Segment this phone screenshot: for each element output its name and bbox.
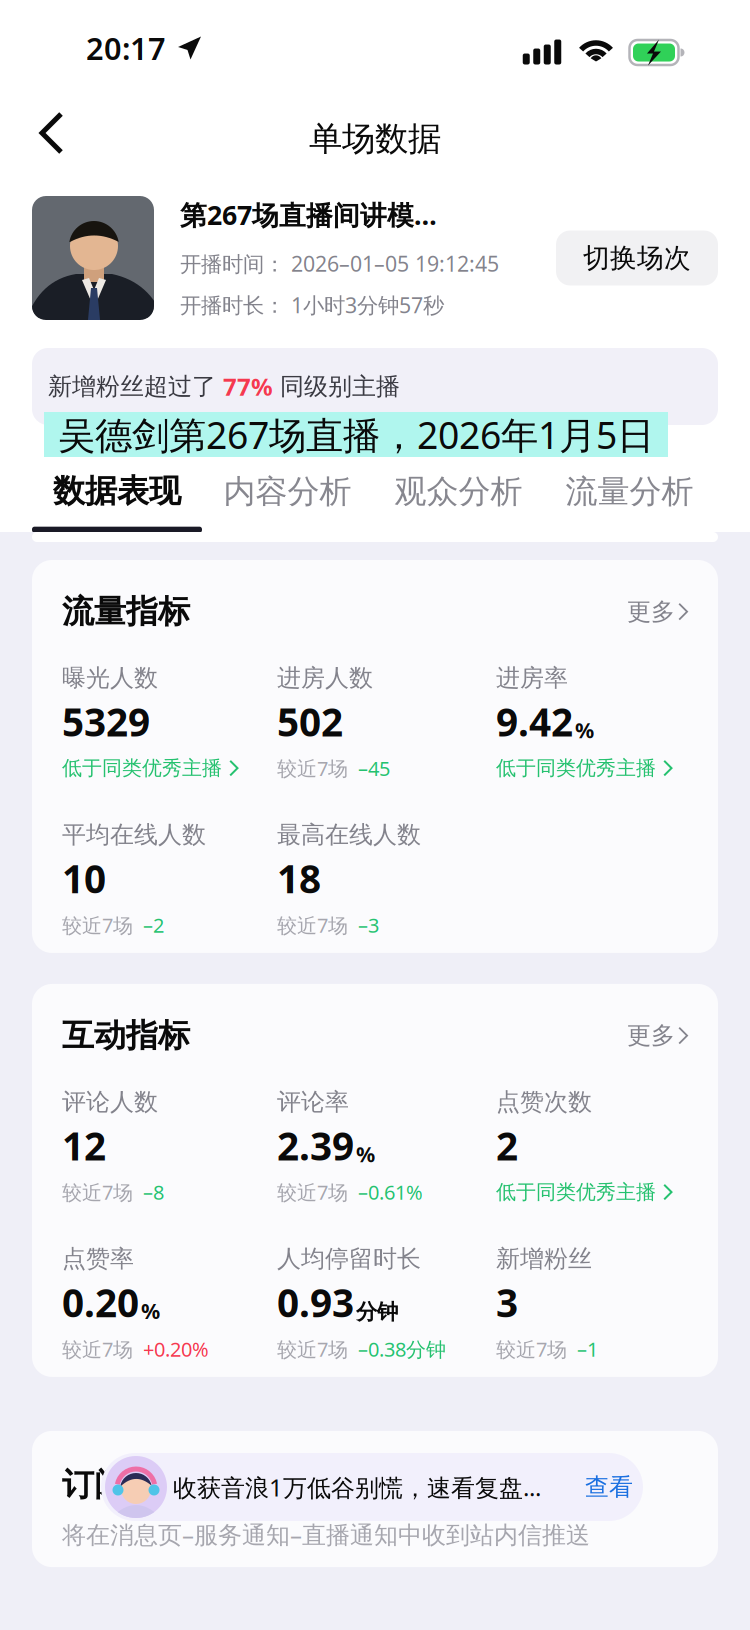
staticText: 3: [496, 1277, 518, 1328]
staticText: +0.20%: [133, 1336, 209, 1362]
staticText: 较近7场: [277, 1179, 348, 1205]
staticText: 互动指标: [62, 1016, 190, 1055]
staticText: 吴德剑第267场直播，2026年1月5日: [58, 410, 654, 459]
staticText: 曝光人数: [62, 663, 158, 693]
button[interactable]: 较近7场: [277, 913, 496, 937]
staticText: 77%: [223, 371, 273, 402]
staticText: 新增粉丝超过了: [48, 372, 223, 401]
button[interactable]: 较近7场: [62, 1180, 277, 1204]
staticText: 进房率: [496, 663, 568, 693]
button[interactable]: 流量分析: [544, 464, 715, 532]
staticText: 最高在线人数: [277, 820, 421, 850]
staticText: 0.93: [277, 1277, 354, 1328]
staticText: 新增粉丝: [496, 1244, 592, 1274]
button[interactable]: 观众分析: [373, 464, 544, 532]
staticText: –2: [133, 912, 164, 938]
button[interactable]: 收获音浪1万低谷别慌，速看复盘找突破: [101, 1453, 643, 1521]
staticText: 20:17: [86, 28, 166, 68]
button[interactable]: 较近7场: [496, 1337, 688, 1361]
staticText: –3: [348, 912, 379, 938]
staticText: 人均停留时长: [277, 1244, 421, 1274]
button[interactable]: 更多: [627, 597, 688, 626]
staticText: –0.61%: [348, 1179, 423, 1205]
staticText: 开播时间： 2026–01–05 19:12:45: [180, 249, 499, 278]
staticText: 低于同类优秀主播: [62, 756, 222, 780]
staticText: 较近7场: [277, 912, 348, 938]
button[interactable]: 较近7场: [277, 756, 496, 780]
staticText: 收获音浪1万低谷别慌，速看复盘找突破: [173, 1471, 555, 1503]
button[interactable]: 较近7场: [62, 913, 277, 937]
staticText: 单场数据: [309, 118, 441, 159]
staticText: 分钟: [356, 1299, 398, 1325]
staticText: –0.38分钟: [348, 1336, 446, 1362]
staticText: 低于同类优秀主播: [496, 756, 656, 780]
staticText: 平均在线人数: [62, 820, 206, 850]
button[interactable]: 低于同类优秀主播: [496, 756, 688, 780]
staticText: 较近7场: [277, 1336, 348, 1362]
staticText: 评论率: [277, 1087, 349, 1117]
staticText: 较近7场: [62, 1179, 133, 1205]
button[interactable]: 较近7场: [277, 1180, 496, 1204]
staticText: 更多: [627, 597, 675, 626]
staticText: 切换场次: [583, 242, 691, 274]
staticText: 较近7场: [62, 912, 133, 938]
staticText: 0.20: [62, 1277, 139, 1328]
staticText: 更多: [627, 1021, 675, 1050]
staticText: –1: [567, 1336, 598, 1362]
staticText: 2: [496, 1120, 518, 1171]
staticText: 502: [277, 696, 343, 747]
staticText: 第267场直播间讲模…: [180, 197, 437, 232]
button[interactable]: 较近7场: [62, 1337, 277, 1361]
button[interactable]: 低于同类优秀主播: [496, 1180, 688, 1204]
button[interactable]: 数据表现: [32, 464, 202, 532]
button[interactable]: Back: [0, 107, 98, 171]
staticText: 10: [62, 853, 106, 904]
button[interactable]: 更多: [627, 1021, 688, 1050]
staticText: 流量分析: [565, 472, 693, 511]
button[interactable]: 较近7场: [277, 1337, 496, 1361]
staticText: 较近7场: [62, 1336, 133, 1362]
staticText: 同级别主播: [273, 372, 400, 401]
staticText: 9.42: [496, 696, 573, 747]
staticText: 查看: [585, 1472, 633, 1502]
staticText: 18: [277, 853, 321, 904]
staticText: 较近7场: [496, 1336, 567, 1362]
button[interactable]: 低于同类优秀主播: [62, 756, 277, 780]
staticText: 较近7场: [277, 755, 348, 781]
staticText: %: [141, 1297, 160, 1325]
staticText: 数据表现: [53, 471, 181, 511]
staticText: 内容分析: [223, 472, 351, 511]
staticText: 5329: [62, 696, 150, 747]
staticText: 将在消息页–服务通知–直播通知中收到站内信推送: [62, 1518, 590, 1550]
staticText: 订阅: [62, 1465, 126, 1504]
staticText: 开播时长： 1小时3分钟57秒: [180, 291, 444, 319]
staticText: 2.39: [277, 1120, 354, 1171]
staticText: 点赞率: [62, 1244, 134, 1274]
staticText: 12: [62, 1120, 106, 1171]
staticText: 评论人数: [62, 1087, 158, 1117]
staticText: 点赞次数: [496, 1087, 592, 1117]
staticText: %: [356, 1140, 375, 1168]
button[interactable]: 切换场次: [556, 230, 718, 285]
staticText: 低于同类优秀主播: [496, 1180, 656, 1204]
button[interactable]: 内容分析: [202, 464, 373, 532]
staticText: –8: [133, 1179, 164, 1205]
staticText: –45: [348, 755, 390, 781]
staticText: 流量指标: [62, 592, 190, 631]
staticText: %: [575, 716, 594, 744]
staticText: 观众分析: [394, 472, 522, 511]
staticText: 进房人数: [277, 663, 373, 693]
